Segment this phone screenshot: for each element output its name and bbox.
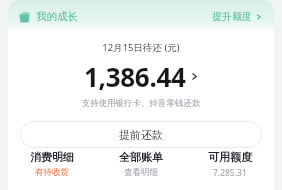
staticText: 有待收货 — [35, 167, 69, 176]
button[interactable]: 消费明细 — [8, 148, 96, 178]
button[interactable]: 提前还款 — [20, 121, 262, 148]
other: 成长等级图标 — [18, 10, 31, 23]
staticText: 提前还款 — [119, 128, 163, 142]
button[interactable]: 提升额度 — [210, 7, 264, 26]
staticText: 我的成长 — [36, 10, 78, 23]
staticText: 支持使用银行卡、抖音零钱还款 — [8, 98, 274, 109]
staticText: 消费明细 — [30, 150, 74, 164]
staticText: 查看明细 — [124, 167, 158, 176]
button[interactable]: 1,386.44 — [8, 59, 274, 94]
staticText: 提升额度 — [212, 10, 252, 23]
staticText: 1,386.44 — [84, 59, 186, 94]
staticText: 可用额度 — [208, 150, 252, 164]
staticText: 12月15日待还 (元) — [8, 41, 274, 54]
button[interactable]: 全部账单 — [96, 148, 185, 178]
button[interactable]: 可用额度 — [185, 148, 274, 178]
staticText: 7,285.31 — [213, 167, 247, 176]
staticText: 全部账单 — [119, 150, 163, 164]
